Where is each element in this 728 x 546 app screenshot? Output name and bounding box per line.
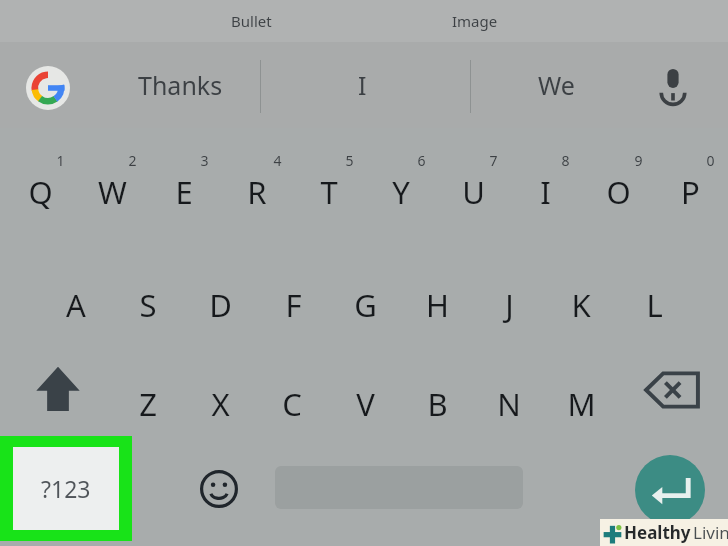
button[interactable] xyxy=(112,358,184,424)
button[interactable] xyxy=(257,258,329,324)
button[interactable] xyxy=(582,128,654,190)
button[interactable] xyxy=(148,128,220,190)
button[interactable] xyxy=(545,358,617,424)
staticText: Living xyxy=(693,521,728,544)
staticText: V xyxy=(356,383,375,425)
button[interactable]: Google xyxy=(26,66,70,110)
staticText: 0 xyxy=(706,151,715,170)
staticText: We xyxy=(538,68,575,102)
staticText: Q xyxy=(28,171,53,213)
button[interactable]: , xyxy=(124,458,182,520)
staticText: Z xyxy=(139,383,157,425)
button[interactable] xyxy=(221,128,293,190)
button[interactable] xyxy=(184,258,256,324)
staticText: 7 xyxy=(489,151,498,170)
button[interactable] xyxy=(509,128,581,190)
staticText: 2 xyxy=(128,151,137,170)
staticText: W xyxy=(98,171,127,213)
button[interactable] xyxy=(184,358,256,424)
staticText: 6 xyxy=(417,151,426,170)
staticText: 4 xyxy=(273,151,282,170)
staticText: Bullet xyxy=(231,11,272,31)
staticText: M xyxy=(567,383,596,425)
staticText: 8 xyxy=(561,151,570,170)
staticText: P xyxy=(681,171,700,213)
staticText: Healthy xyxy=(624,521,691,544)
staticText: O xyxy=(606,171,631,213)
staticText: J xyxy=(505,284,514,326)
button[interactable] xyxy=(329,358,401,424)
button[interactable]: Image xyxy=(420,0,530,42)
staticText: R xyxy=(247,171,267,213)
button[interactable]: ?123 xyxy=(13,447,119,530)
staticText: I xyxy=(540,171,551,213)
staticText: I xyxy=(358,68,367,102)
staticText: Image xyxy=(452,11,498,31)
staticText: B xyxy=(427,383,448,425)
button[interactable] xyxy=(256,358,328,424)
button[interactable]: Voice input xyxy=(645,59,701,115)
button[interactable]: I xyxy=(300,50,424,120)
staticText: 3 xyxy=(200,151,209,170)
button[interactable]: Bullet xyxy=(196,0,306,42)
button[interactable]: Shift xyxy=(22,358,94,422)
button[interactable] xyxy=(329,258,401,324)
button[interactable] xyxy=(76,128,148,190)
staticText: 9 xyxy=(634,151,643,170)
staticText: S xyxy=(139,284,157,326)
staticText: N xyxy=(497,383,521,425)
staticText: ?123 xyxy=(41,473,91,504)
staticText: D xyxy=(209,284,232,326)
staticText: 5 xyxy=(345,151,354,170)
button[interactable] xyxy=(654,128,726,190)
button[interactable] xyxy=(293,128,365,190)
button[interactable]: Thanks xyxy=(100,50,260,120)
staticText: C xyxy=(282,383,302,425)
button[interactable]: Emoji xyxy=(190,458,248,520)
staticText: 1 xyxy=(56,151,65,170)
button[interactable] xyxy=(401,258,473,324)
staticText: F xyxy=(285,284,302,326)
button[interactable] xyxy=(473,358,545,424)
button[interactable]: Backspace xyxy=(636,358,708,422)
staticText: H xyxy=(426,284,449,326)
button[interactable] xyxy=(618,258,690,324)
staticText: G xyxy=(354,284,377,326)
staticText: Thanks xyxy=(138,68,223,102)
staticText: Y xyxy=(392,171,410,213)
button[interactable]: Enter xyxy=(635,455,705,525)
button[interactable] xyxy=(112,258,184,324)
button[interactable] xyxy=(40,258,112,324)
staticText: E xyxy=(175,171,193,213)
staticText: U xyxy=(462,171,485,213)
button[interactable] xyxy=(545,258,617,324)
staticText: X xyxy=(211,383,230,425)
button[interactable] xyxy=(365,128,437,190)
button[interactable] xyxy=(437,128,509,190)
staticText: K xyxy=(571,284,591,326)
staticText: L xyxy=(646,284,663,326)
button[interactable] xyxy=(4,128,76,190)
button[interactable] xyxy=(401,358,473,424)
staticText: A xyxy=(66,284,86,326)
button[interactable] xyxy=(473,258,545,324)
button[interactable]: . xyxy=(552,458,610,520)
staticText: T xyxy=(320,171,338,213)
button[interactable]: We xyxy=(494,50,618,120)
